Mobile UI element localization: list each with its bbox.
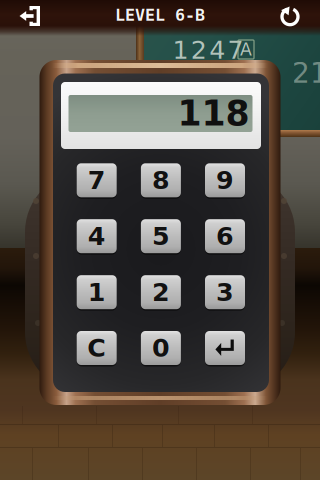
staticText: 6	[216, 221, 234, 251]
button[interactable]: 5	[141, 218, 181, 254]
staticText: 118	[177, 93, 249, 134]
staticText: 1	[172, 35, 188, 65]
staticText: 7	[228, 35, 244, 65]
button[interactable]: 7	[77, 162, 117, 198]
button[interactable]: 4	[77, 218, 117, 254]
staticText: 4	[88, 221, 106, 251]
staticText: 21	[292, 57, 320, 89]
staticText: 3	[216, 277, 234, 307]
staticText: LEVEL 6-B	[115, 5, 205, 25]
staticText: 2	[191, 35, 207, 65]
button[interactable]: 3	[205, 274, 245, 310]
button[interactable]: 2	[141, 274, 181, 310]
button[interactable]: 6	[205, 218, 245, 254]
button[interactable]: Enter	[205, 330, 245, 366]
button[interactable]: 1	[77, 274, 117, 310]
staticText: C	[87, 333, 106, 363]
staticText: A	[240, 39, 252, 60]
button[interactable]: 8	[141, 162, 181, 198]
button[interactable]: C	[77, 330, 117, 366]
button[interactable]: 9	[205, 162, 245, 198]
staticText: 4	[209, 35, 225, 65]
staticText: 9	[216, 166, 234, 195]
staticText: 7	[88, 166, 106, 195]
button[interactable]: 0	[141, 330, 181, 366]
staticText: 2	[152, 277, 170, 307]
staticText: 0	[152, 333, 170, 363]
button[interactable]: Restart level	[268, 2, 312, 30]
staticText: 8	[152, 166, 170, 195]
staticText: 1	[88, 277, 106, 307]
button[interactable]: Exit level	[8, 2, 52, 30]
staticText: 5	[152, 221, 170, 251]
